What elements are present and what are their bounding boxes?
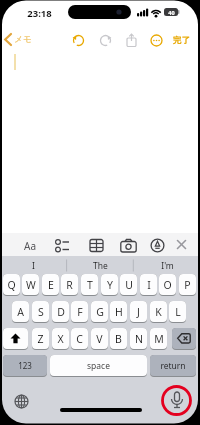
button[interactable] <box>99 34 112 47</box>
button[interactable] <box>150 238 165 253</box>
button[interactable] <box>169 391 185 410</box>
staticText: T <box>87 278 93 292</box>
staticText: P <box>184 278 191 292</box>
button[interactable] <box>150 34 163 47</box>
button[interactable]: I'm <box>134 257 200 274</box>
staticText: 123 <box>18 360 32 371</box>
staticText: return <box>160 360 186 372</box>
button[interactable]: Q <box>3 274 20 296</box>
button[interactable]: I <box>0 257 66 274</box>
staticText: F <box>77 305 83 319</box>
button[interactable]: メモ <box>2 30 42 48</box>
staticText: G <box>96 305 104 319</box>
staticText: D <box>57 305 65 319</box>
button[interactable]: L <box>169 301 186 323</box>
button[interactable] <box>14 394 29 409</box>
staticText: 完了 <box>173 35 190 46</box>
staticText: Y <box>107 278 113 292</box>
button[interactable]: C <box>71 328 88 350</box>
staticText: B <box>115 332 122 346</box>
button[interactable]: F <box>71 301 88 323</box>
staticText: Z <box>37 332 44 346</box>
staticText: space <box>87 360 110 372</box>
button[interactable]: G <box>91 301 108 323</box>
staticText: I'm <box>161 260 174 272</box>
button[interactable] <box>172 328 196 350</box>
button[interactable]: Y <box>101 274 118 296</box>
button[interactable]: E <box>42 274 59 296</box>
button[interactable]: X <box>52 328 69 350</box>
staticText: S <box>38 305 44 319</box>
button[interactable]: R <box>61 274 78 296</box>
button[interactable]: The <box>67 257 133 274</box>
button[interactable] <box>120 238 137 253</box>
button[interactable] <box>174 237 189 252</box>
button[interactable]: P <box>179 274 196 296</box>
button[interactable]: V <box>91 328 108 350</box>
staticText: I <box>32 260 35 272</box>
staticText: メモ <box>14 34 32 45</box>
staticText: V <box>96 332 103 346</box>
button[interactable] <box>89 238 104 253</box>
button[interactable]: A <box>12 301 29 323</box>
button[interactable]: I <box>140 274 157 296</box>
button[interactable]: U <box>120 274 137 296</box>
staticText: J <box>137 305 140 319</box>
button[interactable]: N <box>130 328 147 350</box>
staticText: W <box>26 278 36 292</box>
button[interactable]: M <box>150 328 167 350</box>
button[interactable]: W <box>22 274 39 296</box>
staticText: Q <box>7 278 16 292</box>
button[interactable]: return <box>150 355 196 377</box>
button[interactable]: 123 <box>3 355 47 377</box>
staticText: C <box>76 332 83 346</box>
staticText: R <box>66 278 73 292</box>
button[interactable]: Aa <box>18 234 42 257</box>
button[interactable] <box>55 238 70 253</box>
staticText: The <box>93 260 108 272</box>
button[interactable]: H <box>110 301 127 323</box>
button[interactable]: K <box>150 301 167 323</box>
staticText: 40 <box>168 9 175 16</box>
button[interactable]: space <box>50 355 147 377</box>
staticText: N <box>135 332 143 346</box>
button[interactable]: T <box>81 274 98 296</box>
button[interactable]: O <box>159 274 176 296</box>
staticText: 23:18 <box>27 7 52 20</box>
staticText: Aa <box>24 239 36 253</box>
button[interactable]: 完了 <box>168 32 194 48</box>
button[interactable]: D <box>52 301 69 323</box>
staticText: O <box>163 278 172 292</box>
button[interactable]: B <box>110 328 127 350</box>
button[interactable] <box>3 328 28 350</box>
staticText: E <box>48 278 54 292</box>
button[interactable]: J <box>130 301 147 323</box>
button[interactable]: Z <box>32 328 49 350</box>
button[interactable] <box>125 33 138 48</box>
staticText: A <box>17 305 24 319</box>
staticText: M <box>154 332 164 346</box>
staticText: K <box>155 305 162 319</box>
staticText: U <box>125 278 133 292</box>
staticText: L <box>175 305 181 319</box>
staticText: H <box>115 305 123 319</box>
staticText: I <box>147 278 151 292</box>
button[interactable]: S <box>32 301 49 323</box>
button[interactable] <box>72 34 85 47</box>
staticText: X <box>57 332 64 346</box>
